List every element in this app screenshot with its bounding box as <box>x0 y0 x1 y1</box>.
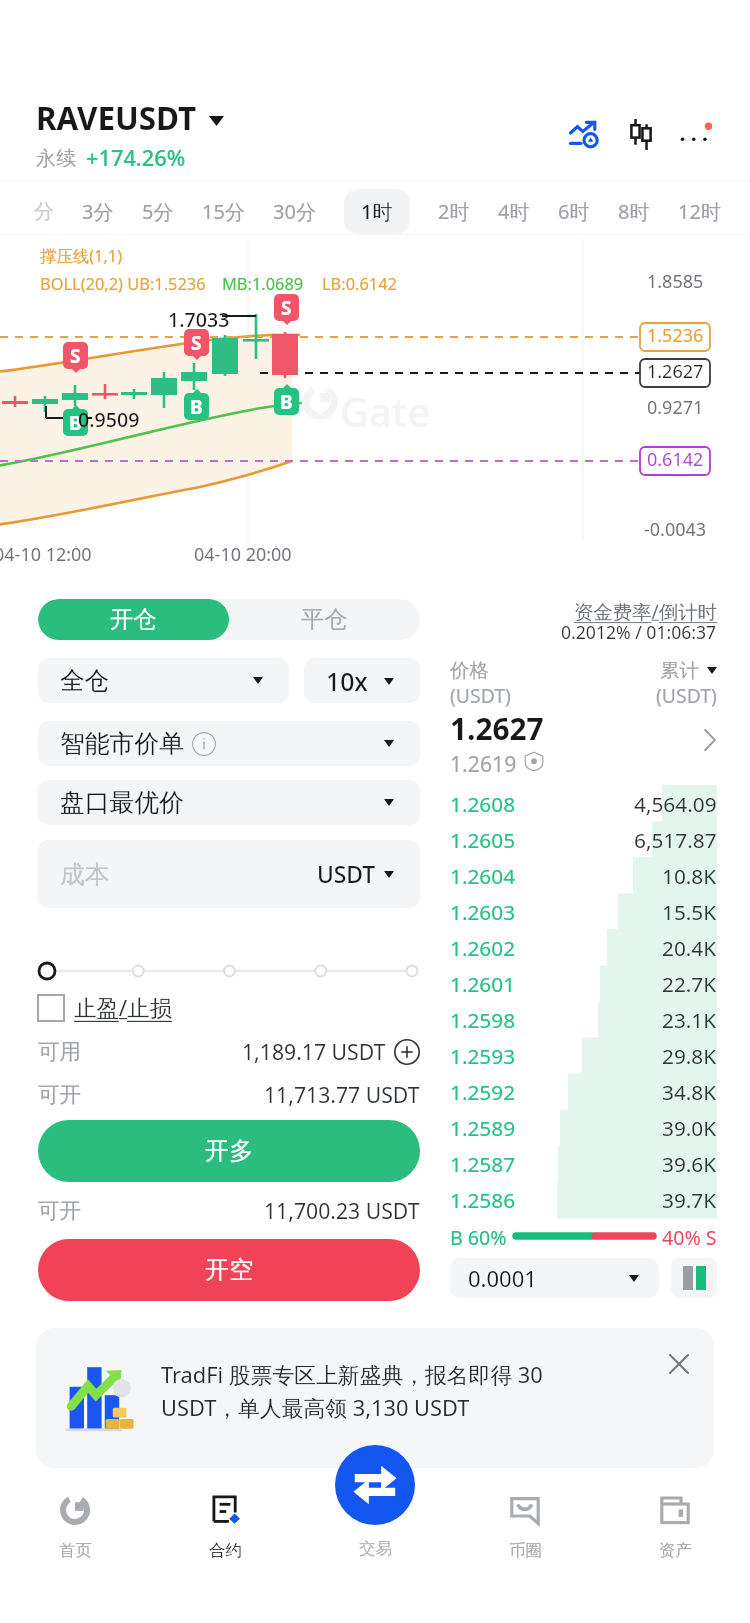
staticText: 6时 <box>558 198 590 225</box>
button[interactable]: 止盈/止损 <box>38 992 172 1023</box>
staticText: 撑压线(1,1) <box>40 244 123 266</box>
staticText: 0.6142 <box>647 447 704 472</box>
staticText: 1.2627 <box>647 359 704 384</box>
staticText: 2时 <box>438 198 470 225</box>
button[interactable]: 币圈 <box>450 1468 600 1561</box>
staticText: 8时 <box>618 198 650 225</box>
button[interactable]: 10x <box>304 658 420 703</box>
staticText: MB:1.0689 <box>222 272 304 294</box>
staticText: S <box>281 295 292 321</box>
staticText: 资产 <box>659 1540 692 1561</box>
button[interactable]: 30分 <box>259 182 330 240</box>
staticText: 10.8K <box>662 862 717 890</box>
staticText: 开多 <box>205 1136 254 1166</box>
staticText: B <box>280 389 293 415</box>
button[interactable]: 5分 <box>128 182 188 240</box>
staticText: 4,564.09 <box>634 790 717 818</box>
staticText: 1.2598 <box>450 1006 516 1034</box>
button[interactable]: 6时 <box>544 182 604 240</box>
staticText: 3分 <box>82 198 114 225</box>
staticText: 6,517.87 <box>634 826 717 854</box>
staticText: (USDT) <box>450 682 511 708</box>
button[interactable]: 开仓 <box>38 599 229 640</box>
staticText: 1.7033 <box>168 306 230 333</box>
staticText: 开空 <box>205 1255 254 1285</box>
button[interactable]: 0.0001 <box>450 1258 659 1298</box>
staticText: 平仓 <box>301 605 348 634</box>
staticText: 1.2592 <box>450 1078 516 1106</box>
staticText: 智能市价单 <box>60 728 184 759</box>
button[interactable]: 1.2592 <box>450 1074 717 1110</box>
staticText: B 60% <box>450 1224 507 1248</box>
button[interactable]: 1.2627 <box>450 708 717 772</box>
staticText: 资金费率/倒计时 <box>574 598 717 624</box>
staticText: 39.6K <box>662 1150 717 1178</box>
staticText: 交易 <box>359 1538 392 1559</box>
staticText: S <box>191 330 202 356</box>
button[interactable]: 4时 <box>484 182 544 240</box>
button[interactable]: 1.2603 <box>450 894 717 930</box>
staticText: 成本 <box>60 859 110 890</box>
button[interactable]: 1.2604 <box>450 858 717 894</box>
button[interactable]: Chart indicators <box>629 119 653 150</box>
button[interactable]: 首页 <box>0 1468 150 1561</box>
button[interactable]: 1.2587 <box>450 1146 717 1182</box>
staticText: 首页 <box>59 1540 92 1561</box>
staticText: 1.5236 <box>647 323 704 348</box>
staticText: +174.26% <box>86 143 186 173</box>
staticText: 5分 <box>142 198 174 225</box>
button[interactable]: 12时 <box>664 182 735 240</box>
button[interactable]: TradFi 股票专区上新盛典，报名即得 30 USDT，单人最高领 3,130… <box>36 1328 714 1468</box>
button[interactable]: 智能市价单 <box>38 721 420 766</box>
button[interactable]: Close banner <box>653 1338 705 1390</box>
staticText: 4时 <box>498 198 530 225</box>
button[interactable]: 开空 <box>38 1239 420 1301</box>
button[interactable]: 1.2601 <box>450 966 717 1002</box>
button[interactable]: 全仓 <box>38 658 289 703</box>
button[interactable]: 合约 <box>150 1468 300 1561</box>
staticText: 1.2603 <box>450 898 516 926</box>
staticText: 可开 <box>38 1197 82 1224</box>
staticText: LB:0.6142 <box>322 272 397 294</box>
button[interactable]: 15分 <box>188 182 259 240</box>
staticText: 1.2604 <box>450 862 516 890</box>
staticText: 39.7K <box>662 1186 717 1214</box>
staticText: 0.0001 <box>468 1263 537 1293</box>
staticText: RAVEUSDT <box>36 96 197 139</box>
button[interactable]: Trading signals <box>569 121 599 147</box>
button[interactable]: 资产 <box>600 1468 750 1561</box>
button[interactable]: 1时 <box>344 189 410 234</box>
staticText: 1.2608 <box>450 790 516 818</box>
staticText: 34.8K <box>662 1078 717 1106</box>
button[interactable]: Depth chart <box>671 1258 717 1298</box>
staticText: 11,713.77 USDT <box>264 1080 420 1109</box>
button[interactable]: 1.2593 <box>450 1038 717 1074</box>
staticText: 04-10 12:00 <box>0 542 92 567</box>
staticText: 29.8K <box>662 1042 717 1070</box>
staticText: BOLL(20,2) UB:1.5236 <box>40 272 206 294</box>
button[interactable]: RAVEUSDT <box>36 96 224 173</box>
button[interactable]: 1.2605 <box>450 822 717 858</box>
staticText: 盘口最优价 <box>60 787 184 818</box>
staticText: 1.8585 <box>647 269 704 294</box>
staticText: 12时 <box>678 198 721 225</box>
button[interactable]: 1.2589 <box>450 1110 717 1146</box>
button[interactable]: More options <box>680 121 712 147</box>
button[interactable]: 1.2602 <box>450 930 717 966</box>
button[interactable]: 8时 <box>604 182 664 240</box>
staticText: 累计 <box>660 658 699 682</box>
button[interactable]: Trade <box>335 1445 415 1525</box>
staticText: 39.0K <box>662 1114 717 1142</box>
button[interactable]: 1.2598 <box>450 1002 717 1038</box>
button[interactable]: 盘口最优价 <box>38 780 420 825</box>
button[interactable]: 3分 <box>68 182 128 240</box>
button[interactable]: 开多 <box>38 1120 420 1182</box>
button[interactable]: 平仓 <box>229 599 420 640</box>
button[interactable]: 分 <box>20 182 68 240</box>
button[interactable]: 1.2586 <box>450 1182 717 1218</box>
button[interactable]: 1.2608 <box>450 785 717 822</box>
button[interactable]: 2时 <box>424 182 484 240</box>
button[interactable]: 成本 <box>38 840 420 908</box>
staticText: 23.1K <box>662 1006 717 1034</box>
staticText: 可用 <box>38 1038 82 1065</box>
